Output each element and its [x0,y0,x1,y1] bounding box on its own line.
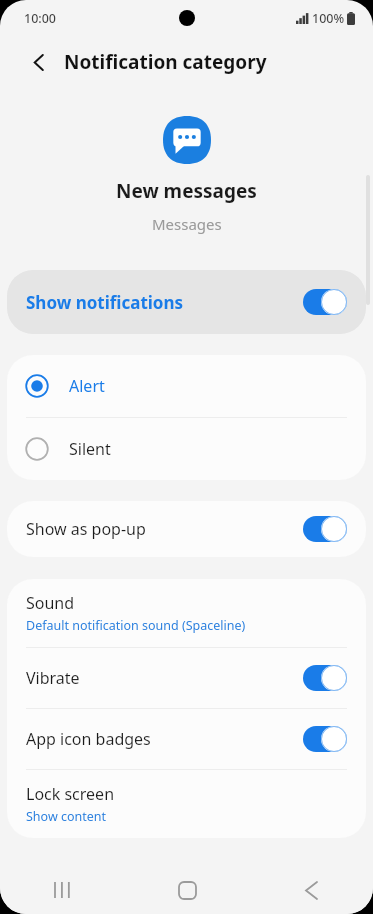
button[interactable]: Silent [7,418,366,480]
staticText: Silent [69,438,111,460]
staticText: App icon badges [26,728,303,750]
staticText: Show content [26,808,107,825]
button[interactable]: Recents [0,866,125,914]
staticText: Alert [69,375,105,397]
staticText: Show as pop-up [26,518,303,540]
staticText: Notification category [64,49,267,75]
staticText: Lock screen [26,783,115,805]
button[interactable]: Show notifications [7,270,366,334]
staticText: Default notification sound (Spaceline) [26,617,246,634]
button[interactable]: App icon badges [7,709,366,769]
button[interactable]: Vibrate [7,648,366,708]
button[interactable]: Show as pop-up [7,501,366,557]
staticText: 100% [312,10,345,27]
button[interactable]: Home [125,866,249,914]
staticText: Vibrate [26,667,303,689]
staticText: 10:00 [24,10,57,27]
button[interactable]: Sound [7,579,366,647]
button[interactable]: Toggle [303,726,347,752]
button[interactable]: Toggle [303,665,347,691]
staticText: Messages [152,214,222,234]
button[interactable]: Alert [7,355,366,417]
button[interactable]: Toggle [303,289,347,315]
button[interactable]: Back [249,866,373,914]
button[interactable]: Toggle [303,516,347,542]
staticText: New messages [116,178,257,204]
button[interactable]: Back [22,45,56,79]
staticText: Show notifications [26,291,303,314]
staticText: Sound [26,592,75,614]
button[interactable]: Lock screen [7,770,366,838]
